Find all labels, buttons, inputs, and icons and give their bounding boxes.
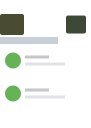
button[interactable] [0, 77, 91, 110]
button[interactable] [0, 44, 91, 77]
